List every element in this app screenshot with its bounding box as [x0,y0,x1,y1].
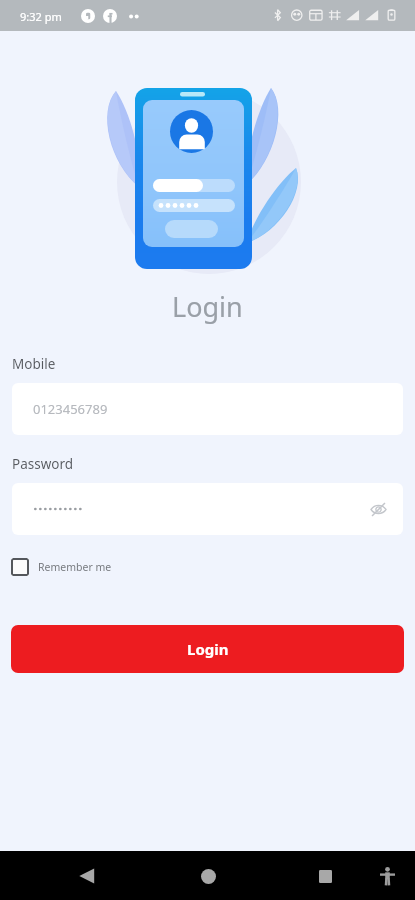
staticText: Password [12,455,74,473]
button[interactable]: Home [188,856,228,896]
button[interactable]: Recent apps [305,856,345,896]
button[interactable]: Remember me [11,556,112,578]
button[interactable]: 0123456789 [12,383,403,435]
staticText: Login [172,288,243,325]
staticText: Login [187,639,229,659]
staticText: 0123456789 [33,400,108,418]
button[interactable]: Login [11,625,404,673]
button[interactable]: Back [67,856,107,896]
button[interactable]: Accessibility [370,859,404,893]
staticText: Mobile [12,355,56,373]
staticText: Remember me [38,560,112,574]
button[interactable]: Show password [365,496,391,522]
staticText: 9:32 pm [20,9,62,24]
button[interactable]: Show password [12,483,403,535]
